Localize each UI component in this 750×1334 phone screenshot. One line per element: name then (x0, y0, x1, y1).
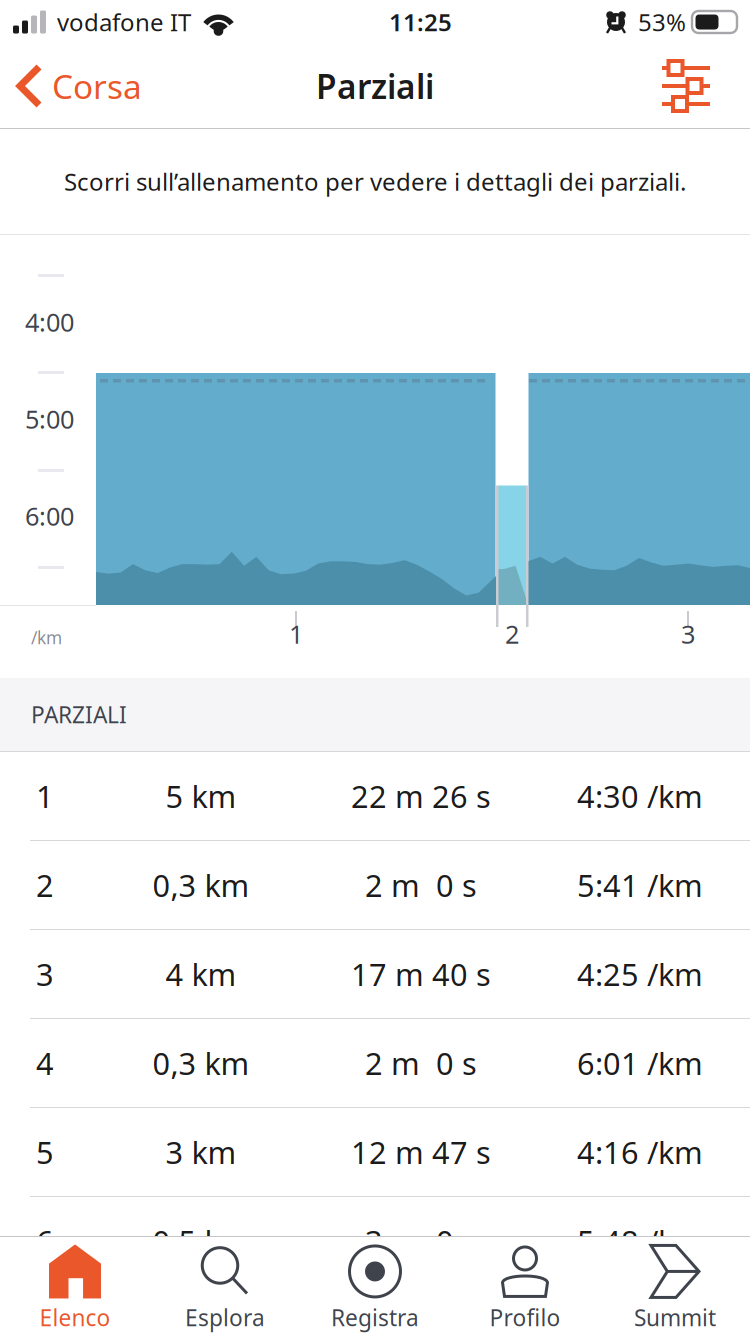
staticText: 12 m 47 s (351, 1132, 491, 1172)
staticText: 22 m 26 s (351, 776, 491, 816)
staticText: 2 (36, 865, 54, 905)
button[interactable]: Filtri (638, 44, 750, 128)
staticText: 4:30 /km (577, 776, 703, 816)
staticText: Elenco (39, 1302, 110, 1332)
button[interactable]: Elenco (0, 1237, 150, 1334)
staticText: 2 m 0 s (365, 865, 477, 905)
staticText: Esplora (185, 1302, 265, 1332)
staticText: 5:41 /km (577, 865, 703, 905)
staticText: 6:01 /km (577, 1043, 703, 1083)
button[interactable]: 5 (0, 1108, 750, 1196)
staticText: 6 (36, 1221, 54, 1261)
staticText: 4 km (165, 954, 236, 994)
staticText: 0,5 km (152, 1221, 249, 1261)
staticText: 3 (36, 954, 54, 994)
staticText: 2 m 0 s (365, 1043, 477, 1083)
staticText: 4:16 /km (577, 1132, 703, 1172)
staticText: 1 (36, 776, 54, 816)
button[interactable]: 2 (0, 841, 750, 929)
staticText: vodafone IT (57, 6, 191, 38)
staticText: 3 km (165, 1132, 236, 1172)
staticText: Corsa (52, 64, 142, 108)
staticText: 5 (36, 1132, 54, 1172)
staticText: 5:48 /km (577, 1221, 703, 1261)
staticText: 5:00 (25, 402, 74, 436)
staticText: 3 (681, 617, 695, 651)
button[interactable]: 3 (0, 930, 750, 1018)
button[interactable]: Corsa (0, 44, 154, 128)
staticText: Scorri sull’allenamento per vedere i det… (64, 166, 686, 197)
button[interactable]: Esplora (150, 1237, 300, 1334)
staticText: 6:00 (25, 499, 74, 533)
button[interactable]: 1 (0, 752, 750, 840)
staticText: 17 m 40 s (351, 954, 491, 994)
button[interactable]: 4 (0, 1019, 750, 1107)
staticText: 5 km (165, 776, 236, 816)
staticText: 3 m 0 s (365, 1221, 477, 1261)
button[interactable]: Profilo (450, 1237, 600, 1334)
staticText: Profilo (489, 1302, 560, 1332)
staticText: Parziali (316, 64, 434, 108)
staticText: Registra (331, 1302, 419, 1332)
staticText: 53% (638, 6, 686, 38)
staticText: /km (31, 626, 62, 649)
button[interactable]: 6 (0, 1197, 750, 1285)
staticText: 0,3 km (152, 865, 249, 905)
staticText: Summit (634, 1302, 716, 1332)
staticText: PARZIALI (31, 699, 127, 729)
staticText: 4 (36, 1043, 54, 1083)
staticText: 11:25 (389, 6, 452, 38)
staticText: 4:00 (25, 305, 74, 339)
button[interactable]: Registra (300, 1237, 450, 1334)
staticText: 1 (289, 617, 303, 651)
staticText: 4:25 /km (577, 954, 703, 994)
button[interactable]: Summit (600, 1237, 750, 1334)
staticText: 2 (505, 617, 519, 651)
staticText: 0,3 km (152, 1043, 249, 1083)
